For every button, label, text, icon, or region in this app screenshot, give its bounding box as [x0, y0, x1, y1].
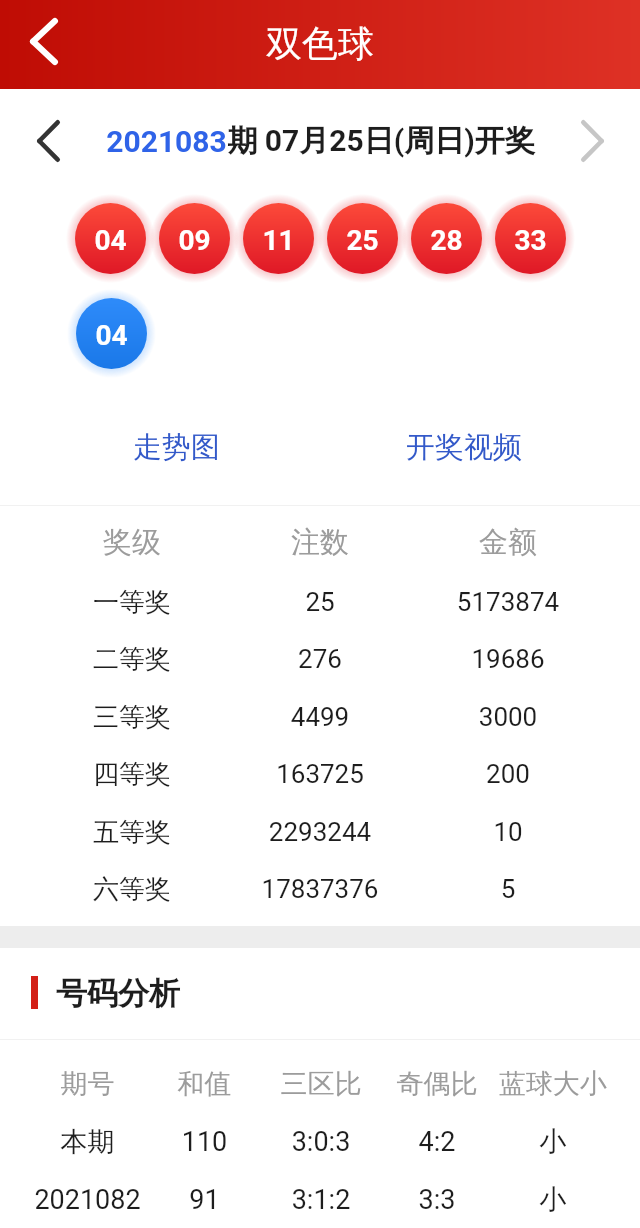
- staticText: 号码分析: [56, 974, 180, 1013]
- staticText: 28: [430, 224, 463, 257]
- staticText: 33: [514, 224, 547, 257]
- staticText: 三等奖: [38, 701, 226, 734]
- staticText: 276: [226, 644, 414, 674]
- button[interactable]: 五等奖: [38, 803, 602, 861]
- button[interactable]: 三等奖: [38, 688, 602, 746]
- staticText: 04: [94, 224, 127, 257]
- staticText: 五等奖: [38, 816, 226, 849]
- staticText: 2293244: [226, 817, 414, 847]
- staticText: 小: [495, 1183, 611, 1217]
- staticText: 走势图: [133, 429, 220, 466]
- staticText: 04: [95, 319, 128, 352]
- button[interactable]: 六等奖: [38, 860, 602, 918]
- staticText: 4:2: [379, 1126, 495, 1158]
- button[interactable]: 奖级: [38, 513, 602, 571]
- button[interactable]: 本期: [29, 1113, 611, 1171]
- staticText: 09: [178, 224, 211, 257]
- button[interactable]: Back: [0, 0, 80, 89]
- staticText: 开奖视频: [406, 429, 522, 466]
- button[interactable]: 2021082: [29, 1171, 611, 1228]
- staticText: 91: [146, 1184, 263, 1216]
- staticText: 3:3: [379, 1184, 495, 1216]
- staticText: 期号: [29, 1067, 146, 1101]
- button[interactable]: 期号: [29, 1055, 611, 1113]
- staticText: 5173874: [414, 587, 602, 617]
- staticText: 二等奖: [38, 643, 226, 676]
- staticText: 25: [346, 224, 379, 257]
- button[interactable]: Next period: [544, 89, 640, 193]
- button[interactable]: 09: [150, 194, 239, 283]
- staticText: 注数: [226, 524, 414, 561]
- button[interactable]: 04: [66, 194, 155, 283]
- staticText: 10: [414, 817, 602, 847]
- staticText: 110: [146, 1126, 263, 1158]
- staticText: 三区比: [263, 1067, 379, 1101]
- staticText: 双色球: [266, 21, 374, 66]
- staticText: 奇偶比: [379, 1067, 495, 1101]
- staticText: 25: [226, 587, 414, 617]
- staticText: 四等奖: [38, 758, 226, 791]
- staticText: 5: [414, 874, 602, 904]
- button[interactable]: 开奖视频: [394, 400, 534, 494]
- staticText: 2021082: [29, 1184, 146, 1216]
- staticText: 11: [262, 224, 295, 257]
- staticText: 19686: [414, 644, 602, 674]
- button[interactable]: 33: [486, 194, 575, 283]
- staticText: 163725: [226, 759, 414, 789]
- staticText: 3000: [414, 702, 602, 732]
- staticText: 一等奖: [38, 586, 226, 619]
- staticText: 蓝球大小: [495, 1067, 611, 1101]
- button[interactable]: 一等奖: [38, 573, 602, 631]
- staticText: 3:0:3: [263, 1126, 379, 1158]
- button[interactable]: 25: [318, 194, 407, 283]
- staticText: 和值: [146, 1067, 263, 1101]
- button[interactable]: 11: [234, 194, 323, 283]
- staticText: 六等奖: [38, 873, 226, 906]
- button[interactable]: 走势图: [106, 400, 246, 494]
- button[interactable]: 28: [402, 194, 491, 283]
- staticText: 2021083: [106, 124, 227, 159]
- staticText: 期 07月25日(周日)开奖: [227, 122, 535, 160]
- button[interactable]: 二等奖: [38, 630, 602, 688]
- staticText: 3:1:2: [263, 1184, 379, 1216]
- staticText: 小: [495, 1125, 611, 1159]
- staticText: 200: [414, 759, 602, 789]
- button[interactable]: Previous period: [0, 89, 96, 193]
- staticText: 4499: [226, 702, 414, 732]
- button[interactable]: 04: [67, 289, 156, 378]
- staticText: 奖级: [38, 524, 226, 561]
- staticText: 金额: [414, 524, 602, 561]
- staticText: 17837376: [226, 874, 414, 904]
- staticText: 本期: [29, 1125, 146, 1159]
- button[interactable]: 四等奖: [38, 745, 602, 803]
